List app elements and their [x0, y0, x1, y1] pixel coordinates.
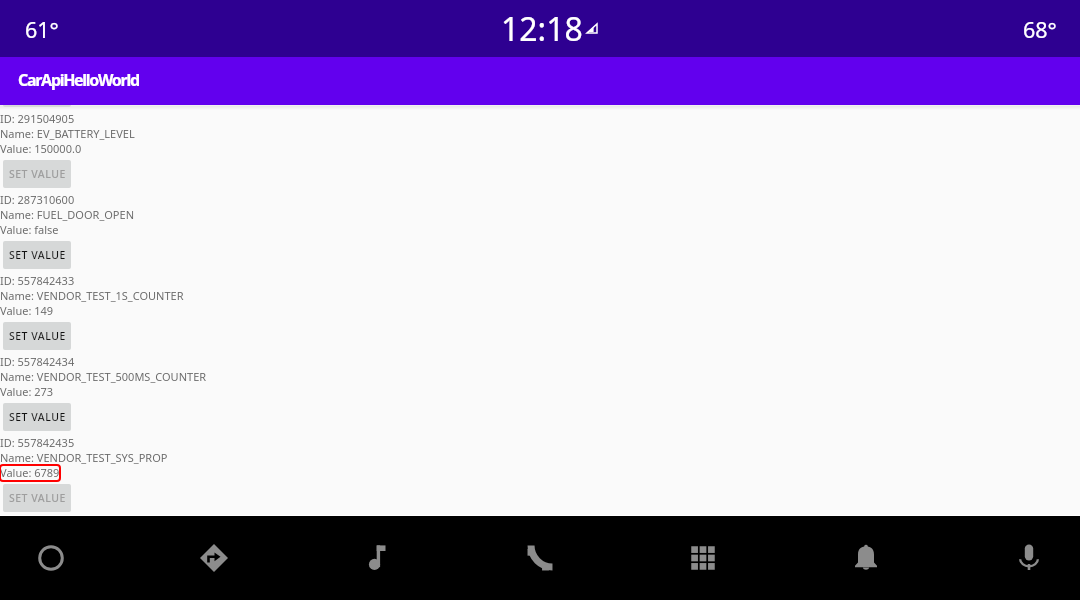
staticText: SET VALUE: [9, 248, 66, 262]
staticText: 12:18: [501, 7, 583, 51]
staticText: ID: 557842433: [0, 273, 75, 288]
staticText: Name: FUEL_DOOR_OPEN: [0, 207, 135, 222]
button[interactable]: Apps: [663, 516, 743, 600]
button[interactable]: Home: [11, 516, 91, 600]
button[interactable]: Music: [337, 516, 417, 600]
staticText: SET VALUE: [9, 167, 66, 181]
staticText: Value: 6789: [0, 465, 60, 480]
staticText: ID: 557842435: [0, 435, 75, 450]
staticText: 68°: [1023, 15, 1057, 44]
staticText: SET VALUE: [9, 329, 66, 343]
staticText: Name: VENDOR_TEST_SYS_PROP: [0, 450, 168, 465]
staticText: Name: VENDOR_TEST_500MS_COUNTER: [0, 369, 207, 384]
staticText: Name: VENDOR_TEST_1S_COUNTER: [0, 288, 184, 303]
staticText: Value: 149: [0, 303, 54, 318]
staticText: Value: 273: [0, 384, 54, 399]
staticText: SET VALUE: [9, 410, 66, 424]
button[interactable]: SET VALUE: [3, 484, 71, 512]
staticText: SET VALUE: [9, 491, 66, 505]
button[interactable]: Navigation: [174, 516, 254, 600]
button[interactable]: SET VALUE: [3, 160, 71, 188]
button[interactable]: SET VALUE: [3, 322, 71, 350]
other: Mobile signal strength: [587, 24, 598, 34]
staticText: ID: 291504905: [0, 111, 75, 126]
button[interactable]: Notifications: [826, 516, 906, 600]
staticText: ID: 557842434: [0, 354, 75, 369]
staticText: ID: 287310600: [0, 192, 75, 207]
staticText: Name: EV_BATTERY_LEVEL: [0, 126, 135, 141]
staticText: 61°: [25, 15, 59, 44]
button[interactable]: Phone: [500, 516, 580, 600]
staticText: Value: false: [0, 222, 59, 237]
button[interactable]: SET VALUE: [3, 241, 71, 269]
staticText: Value: 150000.0: [0, 141, 82, 156]
button[interactable]: Assistant: [989, 516, 1069, 600]
button[interactable]: SET VALUE: [3, 403, 71, 431]
staticText: CarApiHelloWorld: [18, 69, 139, 91]
